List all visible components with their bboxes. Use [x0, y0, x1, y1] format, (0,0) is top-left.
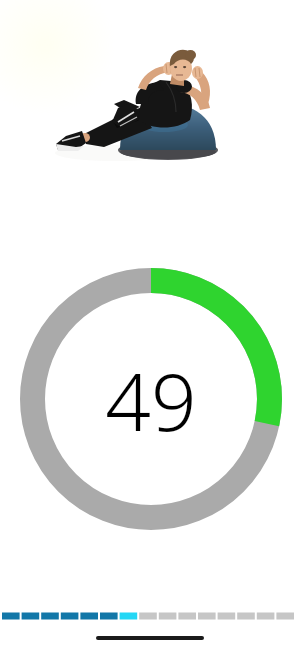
button[interactable]: Workout progress: 7 of 15 segments compl…	[0, 608, 300, 624]
button[interactable]: Exercise demonstration video	[0, 0, 300, 220]
staticText: 49	[105, 345, 197, 454]
button[interactable]: Repetition counter 49	[17, 265, 285, 533]
